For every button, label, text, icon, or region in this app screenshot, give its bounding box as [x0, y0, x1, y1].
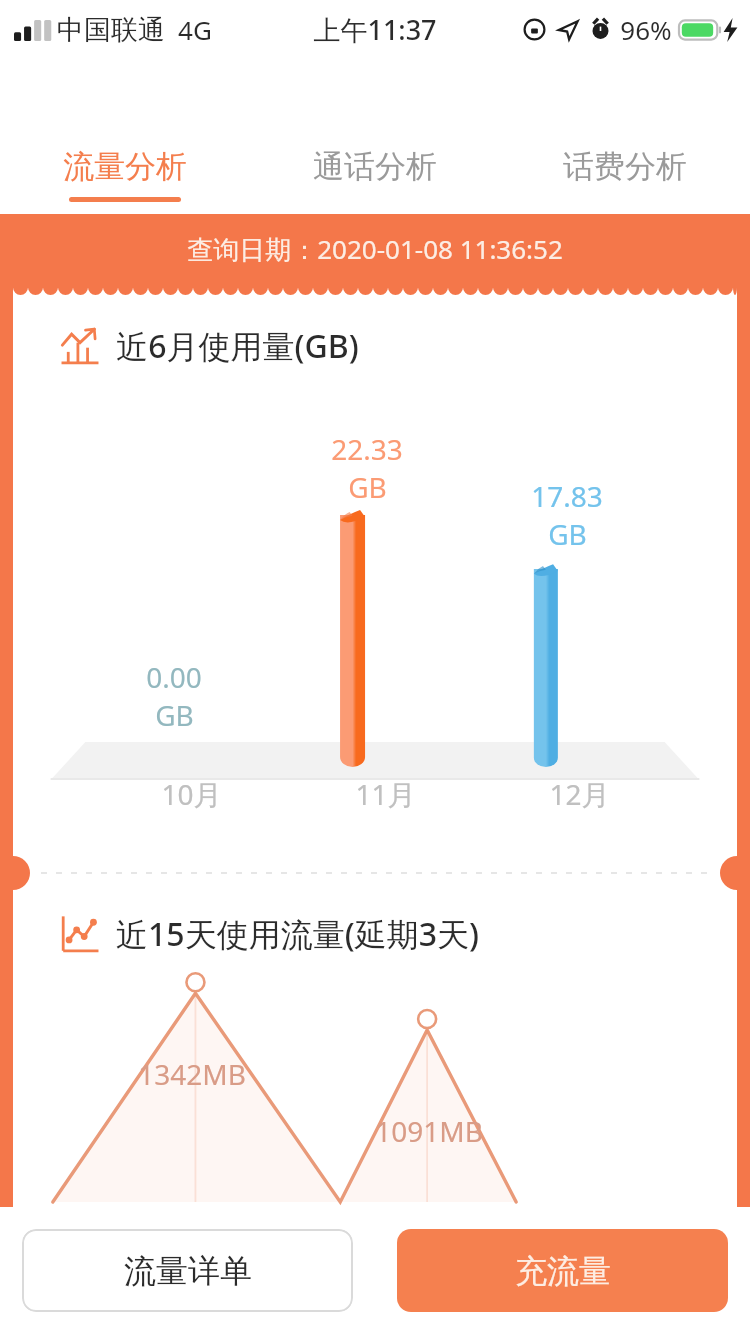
button[interactable]: 话费分析: [500, 58, 750, 214]
staticText: 1342MB: [138, 1055, 246, 1093]
staticText: 12月: [549, 775, 610, 813]
button[interactable]: 通话分析: [250, 58, 500, 214]
staticText: 上午11:37: [313, 11, 437, 48]
staticText: 17.83: [531, 477, 603, 515]
staticText: GB: [155, 696, 194, 734]
staticText: 查询日期：2020-01-08 11:36:52: [187, 231, 563, 267]
staticText: 4G: [178, 12, 212, 47]
staticText: 话费分析: [563, 147, 687, 186]
staticText: 10月: [161, 775, 222, 813]
staticText: 近6月使用量(GB): [116, 324, 359, 368]
staticText: 流量详单: [124, 1251, 252, 1291]
staticText: 22.33: [331, 430, 403, 468]
staticText: 通话分析: [313, 147, 437, 186]
staticText: 中国联通: [57, 13, 165, 47]
staticText: 近15天使用流量(延期3天): [116, 912, 479, 956]
staticText: 1091MB: [375, 1112, 483, 1150]
staticText: GB: [548, 515, 587, 553]
staticText: 11月: [355, 775, 416, 813]
staticText: 96%: [620, 12, 672, 47]
button[interactable]: 流量详单: [22, 1229, 353, 1312]
button[interactable]: 流量分析: [0, 58, 250, 214]
staticText: GB: [348, 468, 387, 506]
staticText: 0.00: [146, 658, 202, 696]
button[interactable]: 充流量: [397, 1229, 728, 1312]
staticText: 流量分析: [63, 147, 187, 186]
staticText: 充流量: [515, 1251, 611, 1291]
